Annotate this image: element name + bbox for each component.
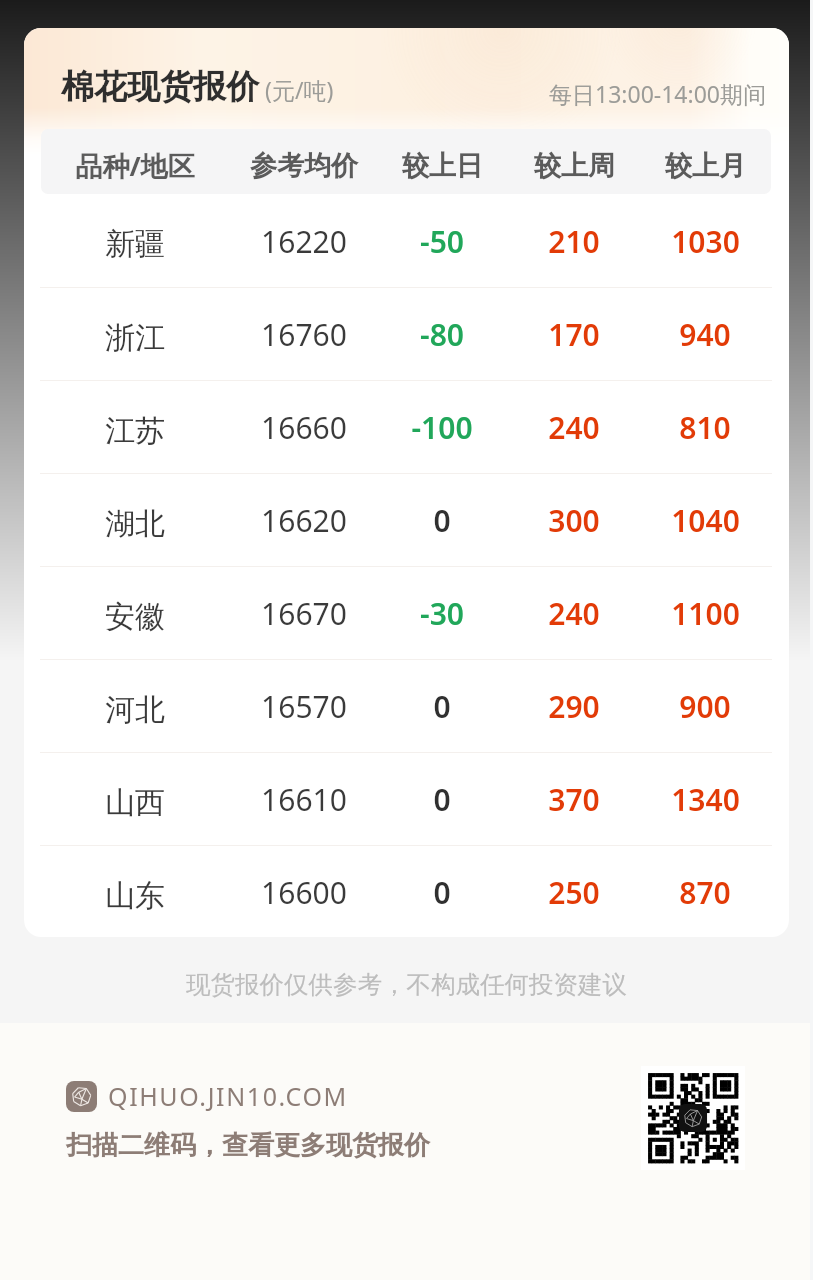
- staticText: 山东: [105, 877, 165, 915]
- staticText: 16570: [261, 686, 347, 727]
- other: 二维码: [641, 1066, 745, 1170]
- staticText: 扫描二维码，查看更多现货报价: [66, 1129, 430, 1162]
- staticText: QIHUO.JIN10.COM: [108, 1079, 348, 1113]
- staticText: -80: [420, 314, 464, 355]
- staticText: 870: [679, 872, 731, 913]
- staticText: 河北: [105, 691, 165, 729]
- staticText: 湖北: [105, 505, 165, 543]
- staticText: 170: [548, 314, 600, 355]
- staticText: 品种/地区: [75, 147, 195, 184]
- staticText: -50: [420, 221, 464, 262]
- staticText: 浙江: [105, 319, 165, 357]
- staticText: 棉花现货报价: [61, 66, 259, 108]
- staticText: 290: [548, 686, 600, 727]
- button[interactable]: 山东: [24, 846, 789, 937]
- button[interactable]: 山西: [24, 753, 789, 845]
- staticText: 1040: [671, 500, 740, 541]
- staticText: 370: [548, 779, 600, 820]
- staticText: 1340: [671, 779, 740, 820]
- staticText: 16600: [261, 872, 347, 913]
- staticText: 210: [548, 221, 600, 262]
- staticText: 940: [679, 314, 731, 355]
- staticText: 较上月: [665, 149, 746, 183]
- staticText: 250: [548, 872, 600, 913]
- button[interactable]: 浙江: [24, 288, 789, 380]
- staticText: -30: [420, 593, 464, 634]
- staticText: 300: [548, 500, 600, 541]
- button[interactable]: 江苏: [24, 381, 789, 473]
- staticText: 900: [679, 686, 731, 727]
- staticText: 810: [679, 407, 731, 448]
- button[interactable]: 河北: [24, 660, 789, 752]
- staticText: 16660: [261, 407, 347, 448]
- staticText: 0: [433, 872, 451, 913]
- staticText: 0: [433, 500, 451, 541]
- staticText: 1030: [671, 221, 740, 262]
- staticText: 每日13:00-14:00期间: [549, 78, 766, 109]
- staticText: 16760: [261, 314, 347, 355]
- staticText: 新疆: [105, 225, 165, 263]
- staticText: 现货报价仅供参考，不构成任何投资建议: [186, 969, 627, 1000]
- button[interactable]: 新疆: [24, 194, 789, 287]
- staticText: 240: [548, 593, 600, 634]
- staticText: 安徽: [105, 598, 165, 636]
- button[interactable]: 安徽: [24, 567, 789, 659]
- button[interactable]: 湖北: [24, 474, 789, 566]
- staticText: 山西: [105, 784, 165, 822]
- staticText: 1100: [671, 593, 740, 634]
- staticText: 0: [433, 779, 451, 820]
- staticText: 较上日: [402, 149, 483, 183]
- staticText: 16670: [261, 593, 347, 634]
- staticText: 240: [548, 407, 600, 448]
- staticText: 0: [433, 686, 451, 727]
- staticText: 16610: [261, 779, 347, 820]
- staticText: 参考均价: [250, 149, 358, 183]
- staticText: 16620: [261, 500, 347, 541]
- staticText: 16220: [261, 221, 347, 262]
- staticText: 较上周: [534, 149, 615, 183]
- staticText: -100: [411, 407, 473, 448]
- staticText: 江苏: [105, 412, 165, 450]
- staticText: (元/吨): [265, 74, 334, 105]
